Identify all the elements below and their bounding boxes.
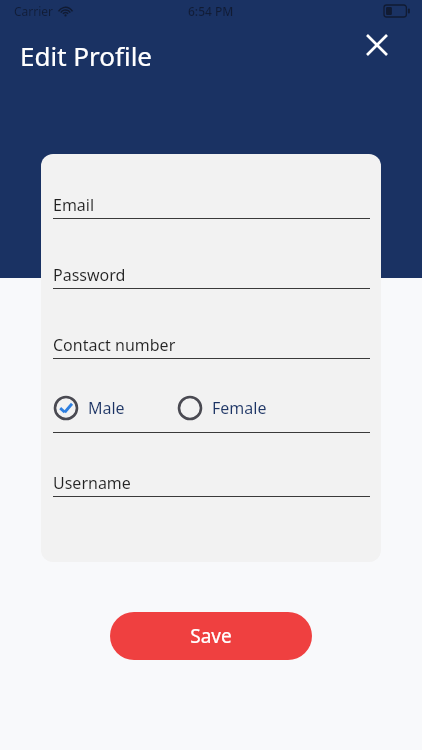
button[interactable]: Close [354, 22, 400, 68]
staticText: Female [212, 397, 267, 419]
staticText: Email [53, 194, 95, 216]
staticText: Username [53, 472, 131, 494]
button[interactable]: Save [110, 612, 312, 660]
staticText: Password [53, 264, 126, 286]
staticText: Carrier [14, 3, 54, 19]
staticText: Contact number [53, 334, 176, 356]
button[interactable]: Female [177, 395, 271, 421]
button[interactable]: Male [53, 395, 129, 421]
staticText: 6:54 PM [188, 3, 234, 19]
staticText: Save [190, 623, 232, 649]
staticText: Male [88, 397, 125, 419]
staticText: Edit Profile [20, 38, 153, 73]
